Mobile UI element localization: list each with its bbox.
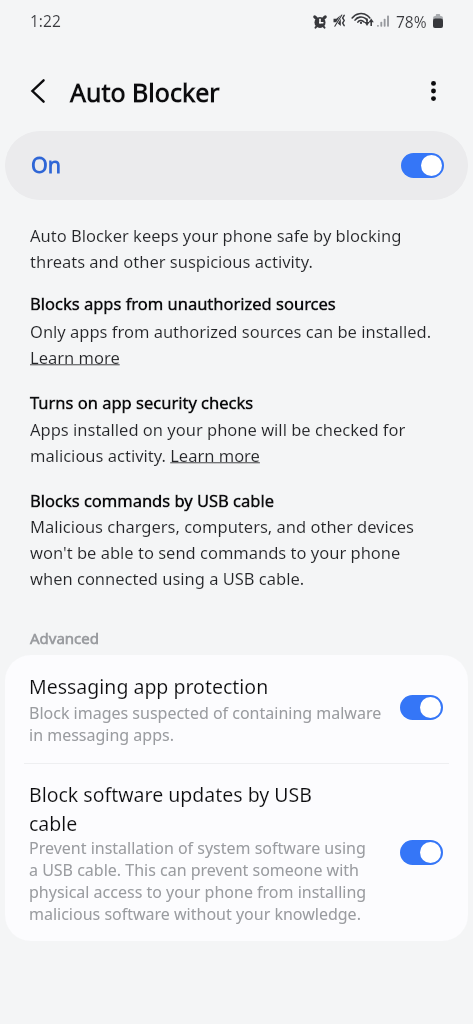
staticText: 78% [396, 11, 427, 32]
staticText: Auto Blocker [70, 75, 220, 109]
staticText: Messaging app protection [29, 673, 389, 700]
staticText: Malicious chargers, computers, and other… [30, 515, 443, 589]
button[interactable] [5, 764, 468, 941]
button[interactable]: Toggle [400, 840, 443, 865]
button[interactable]: On [5, 131, 468, 200]
staticText: Apps installed on your phone will be che… [30, 418, 443, 466]
button[interactable]: More options [413, 71, 453, 111]
button[interactable]: Navigate up [18, 71, 58, 111]
staticText: Advanced [30, 628, 100, 648]
staticText: Prevent installation of system software … [29, 837, 374, 925]
button[interactable]: Toggle [400, 695, 443, 720]
button[interactable]: Toggle [401, 153, 444, 178]
staticText: Blocks apps from unauthorized sources [30, 292, 443, 314]
staticText: Auto Blocker keeps your phone safe by bl… [30, 224, 443, 272]
staticText: 1:22 [30, 10, 61, 31]
staticText: Block software updates by USB cable [29, 781, 349, 837]
staticText: On [31, 150, 62, 179]
button[interactable] [5, 655, 468, 763]
staticText: Only apps from authorized sources can be… [30, 320, 443, 368]
staticText: Turns on app security checks [30, 391, 443, 413]
staticText: Blocks commands by USB cable [30, 489, 443, 511]
staticText: Block images suspected of containing mal… [29, 702, 389, 746]
